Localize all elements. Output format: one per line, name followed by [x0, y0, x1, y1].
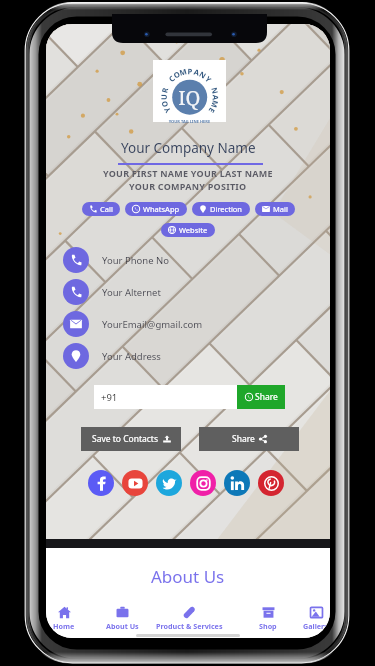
button[interactable]: YourEmail@gmail.com	[46, 311, 330, 337]
button[interactable]: Pinterest	[258, 470, 284, 496]
staticText: Website	[179, 225, 208, 235]
button[interactable]: Share	[237, 385, 285, 409]
staticText: Product & Services	[156, 621, 223, 631]
staticText: YOUR COMPANY POSITIO	[129, 180, 247, 192]
button[interactable]: Product & Services	[156, 605, 223, 635]
button[interactable]: Save to Contacts	[81, 427, 181, 451]
staticText: About Us	[106, 621, 139, 631]
button[interactable]: YouTube	[122, 470, 148, 496]
button[interactable]: Shop	[259, 605, 277, 635]
staticText: Call	[100, 204, 113, 214]
button[interactable]: Twitter	[156, 470, 182, 496]
staticText: Share	[255, 391, 278, 403]
button[interactable]: Call	[82, 202, 120, 216]
button[interactable]: Home	[53, 605, 75, 635]
button[interactable]: Facebook	[88, 470, 114, 496]
button[interactable]: Your Address	[46, 343, 330, 369]
button[interactable]: Website	[161, 223, 215, 237]
staticText: YourEmail@gmail.com	[102, 318, 203, 331]
button[interactable]: Your Alternet	[46, 279, 330, 305]
button[interactable]: About Us	[106, 605, 139, 635]
staticText: Your Alternet	[102, 286, 161, 299]
button[interactable]: Instagram	[190, 470, 216, 496]
button[interactable]: Direction	[192, 202, 250, 216]
staticText: Direction	[210, 204, 243, 214]
staticText: Your Company Name	[121, 139, 256, 157]
staticText: Save to Contacts	[92, 433, 159, 445]
button[interactable]: Gallery	[303, 605, 329, 635]
button[interactable]: +91	[94, 385, 237, 409]
button[interactable]: About Us	[46, 558, 330, 594]
staticText: WhatsApp	[143, 204, 180, 214]
staticText: Home	[53, 621, 75, 631]
staticText: Your Phone No	[102, 254, 169, 267]
button[interactable]: Your Phone No	[46, 247, 330, 273]
staticText: Gallery	[303, 621, 329, 631]
button[interactable]: WhatsApp	[125, 202, 187, 216]
staticText: YOUR FIRST NAME YOUR LAST NAME	[103, 167, 273, 179]
staticText: About Us	[151, 565, 225, 588]
staticText: +91	[101, 391, 118, 404]
staticText: Mail	[273, 204, 288, 214]
staticText: Shop	[259, 621, 277, 631]
staticText: Share	[232, 433, 255, 445]
button[interactable]: Share	[199, 427, 299, 451]
staticText: Your Address	[102, 350, 161, 363]
button[interactable]: LinkedIn	[224, 470, 250, 496]
button[interactable]: Mail	[255, 202, 295, 216]
